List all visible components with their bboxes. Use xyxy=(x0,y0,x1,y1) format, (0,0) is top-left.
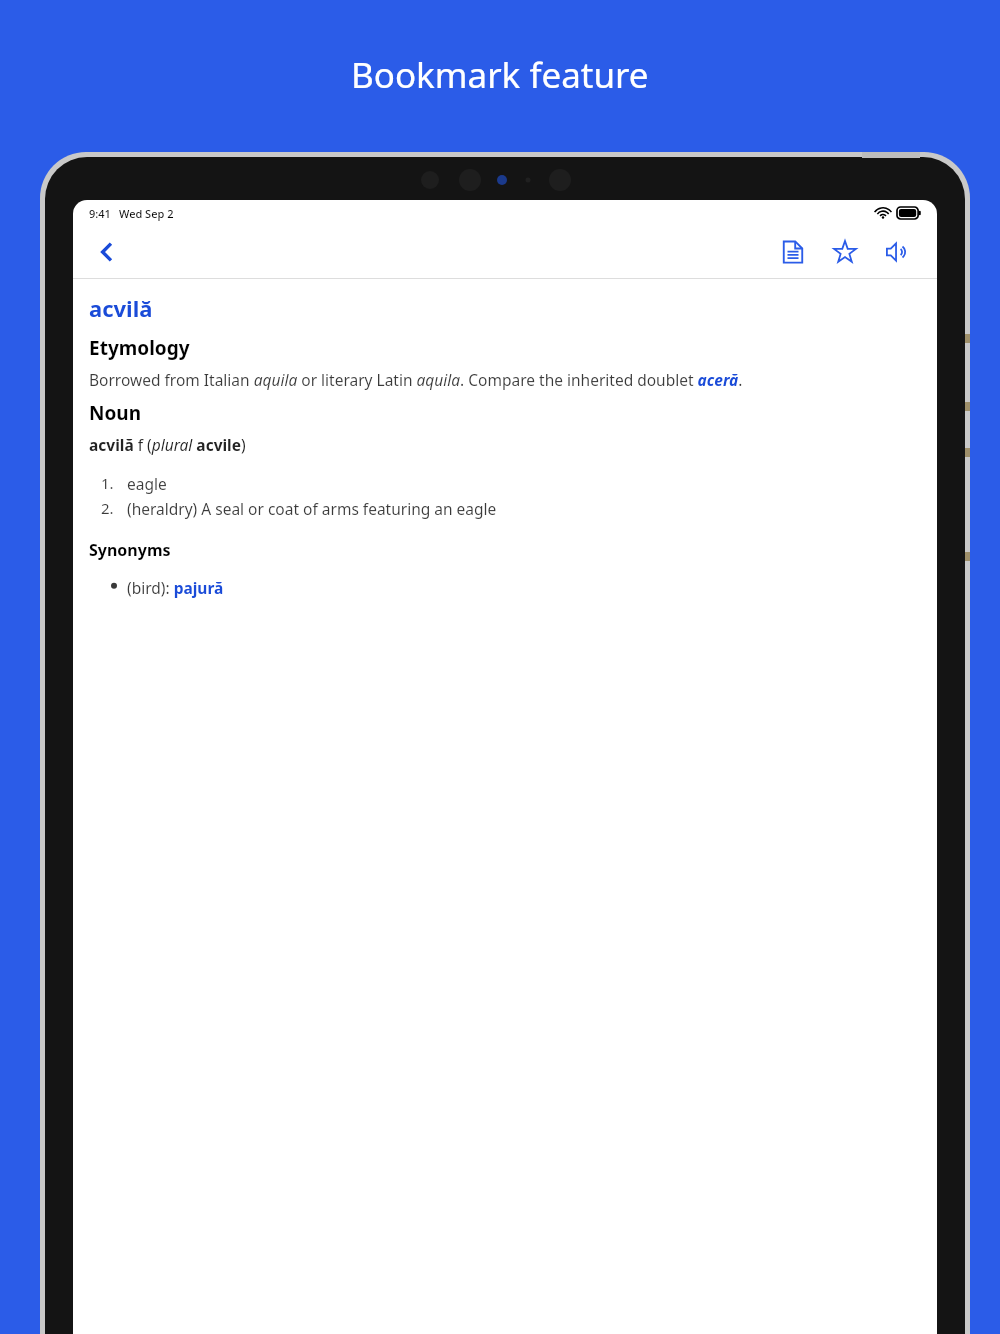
staticText: (heraldry) A seal or coat of arms featur… xyxy=(127,498,497,519)
button[interactable]: acvilă xyxy=(89,293,153,323)
staticText: 2. xyxy=(101,498,114,518)
staticText: Etymology xyxy=(89,335,190,361)
button[interactable]: (bird): pajură xyxy=(127,577,224,598)
staticText: Bookmark feature xyxy=(351,51,649,99)
staticText: eagle xyxy=(127,473,167,494)
button[interactable]: Article xyxy=(771,230,815,274)
staticText: acvilă f (plural acvile) xyxy=(89,434,246,455)
button[interactable]: Pronounce xyxy=(875,230,919,274)
staticText: Noun xyxy=(89,400,142,426)
staticText: 1. xyxy=(101,473,114,493)
staticText: Borrowed from Italian aquila or literary… xyxy=(89,369,743,390)
staticText: Synonyms xyxy=(89,539,171,561)
staticText: 9:41 xyxy=(89,206,111,221)
button[interactable]: Bookmark xyxy=(823,230,867,274)
staticText: Wed Sep 2 xyxy=(119,206,174,221)
button[interactable]: Back xyxy=(85,230,129,274)
